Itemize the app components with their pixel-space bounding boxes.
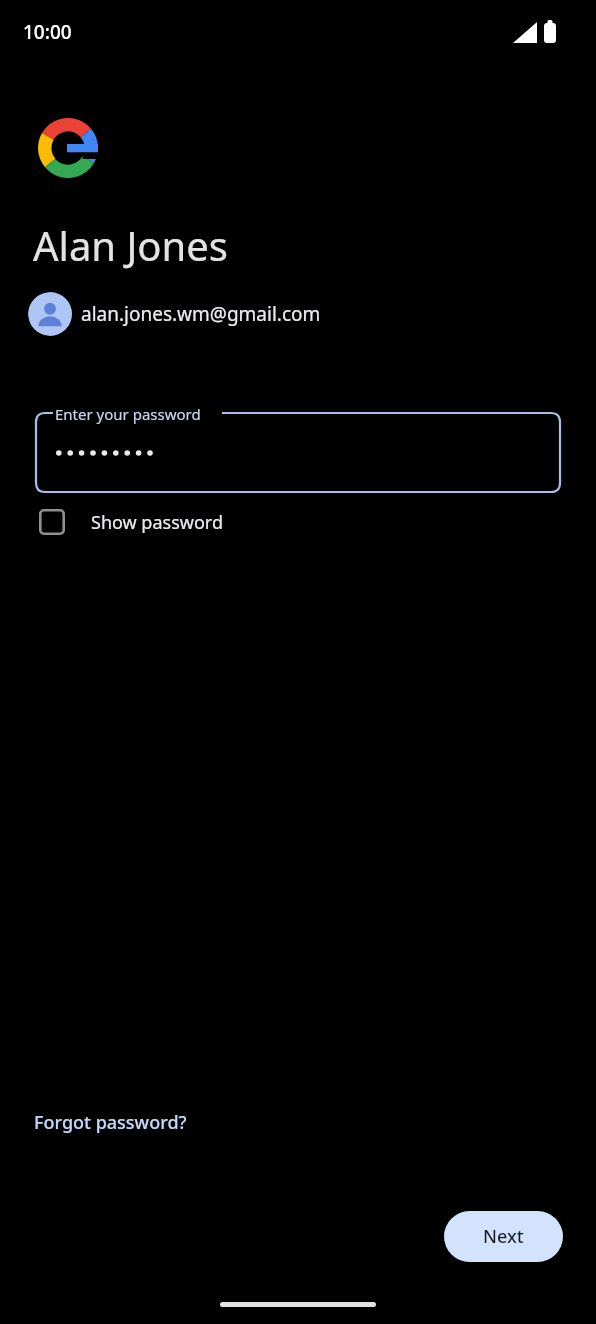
staticText: Alan Jones xyxy=(33,218,228,272)
button[interactable]: Forgot password? xyxy=(24,1104,197,1141)
button[interactable]: Show password xyxy=(30,500,223,544)
staticText: Enter your password xyxy=(55,404,201,424)
staticText: Next xyxy=(483,1224,524,1249)
button[interactable]: Next xyxy=(444,1211,563,1262)
staticText: Show password xyxy=(91,510,223,535)
staticText: 10:00 xyxy=(23,19,72,45)
button[interactable] xyxy=(36,413,560,492)
staticText: Forgot password? xyxy=(34,1110,187,1135)
button[interactable]: alan.jones.wm@gmail.com xyxy=(28,292,321,336)
staticText: alan.jones.wm@gmail.com xyxy=(81,301,321,327)
